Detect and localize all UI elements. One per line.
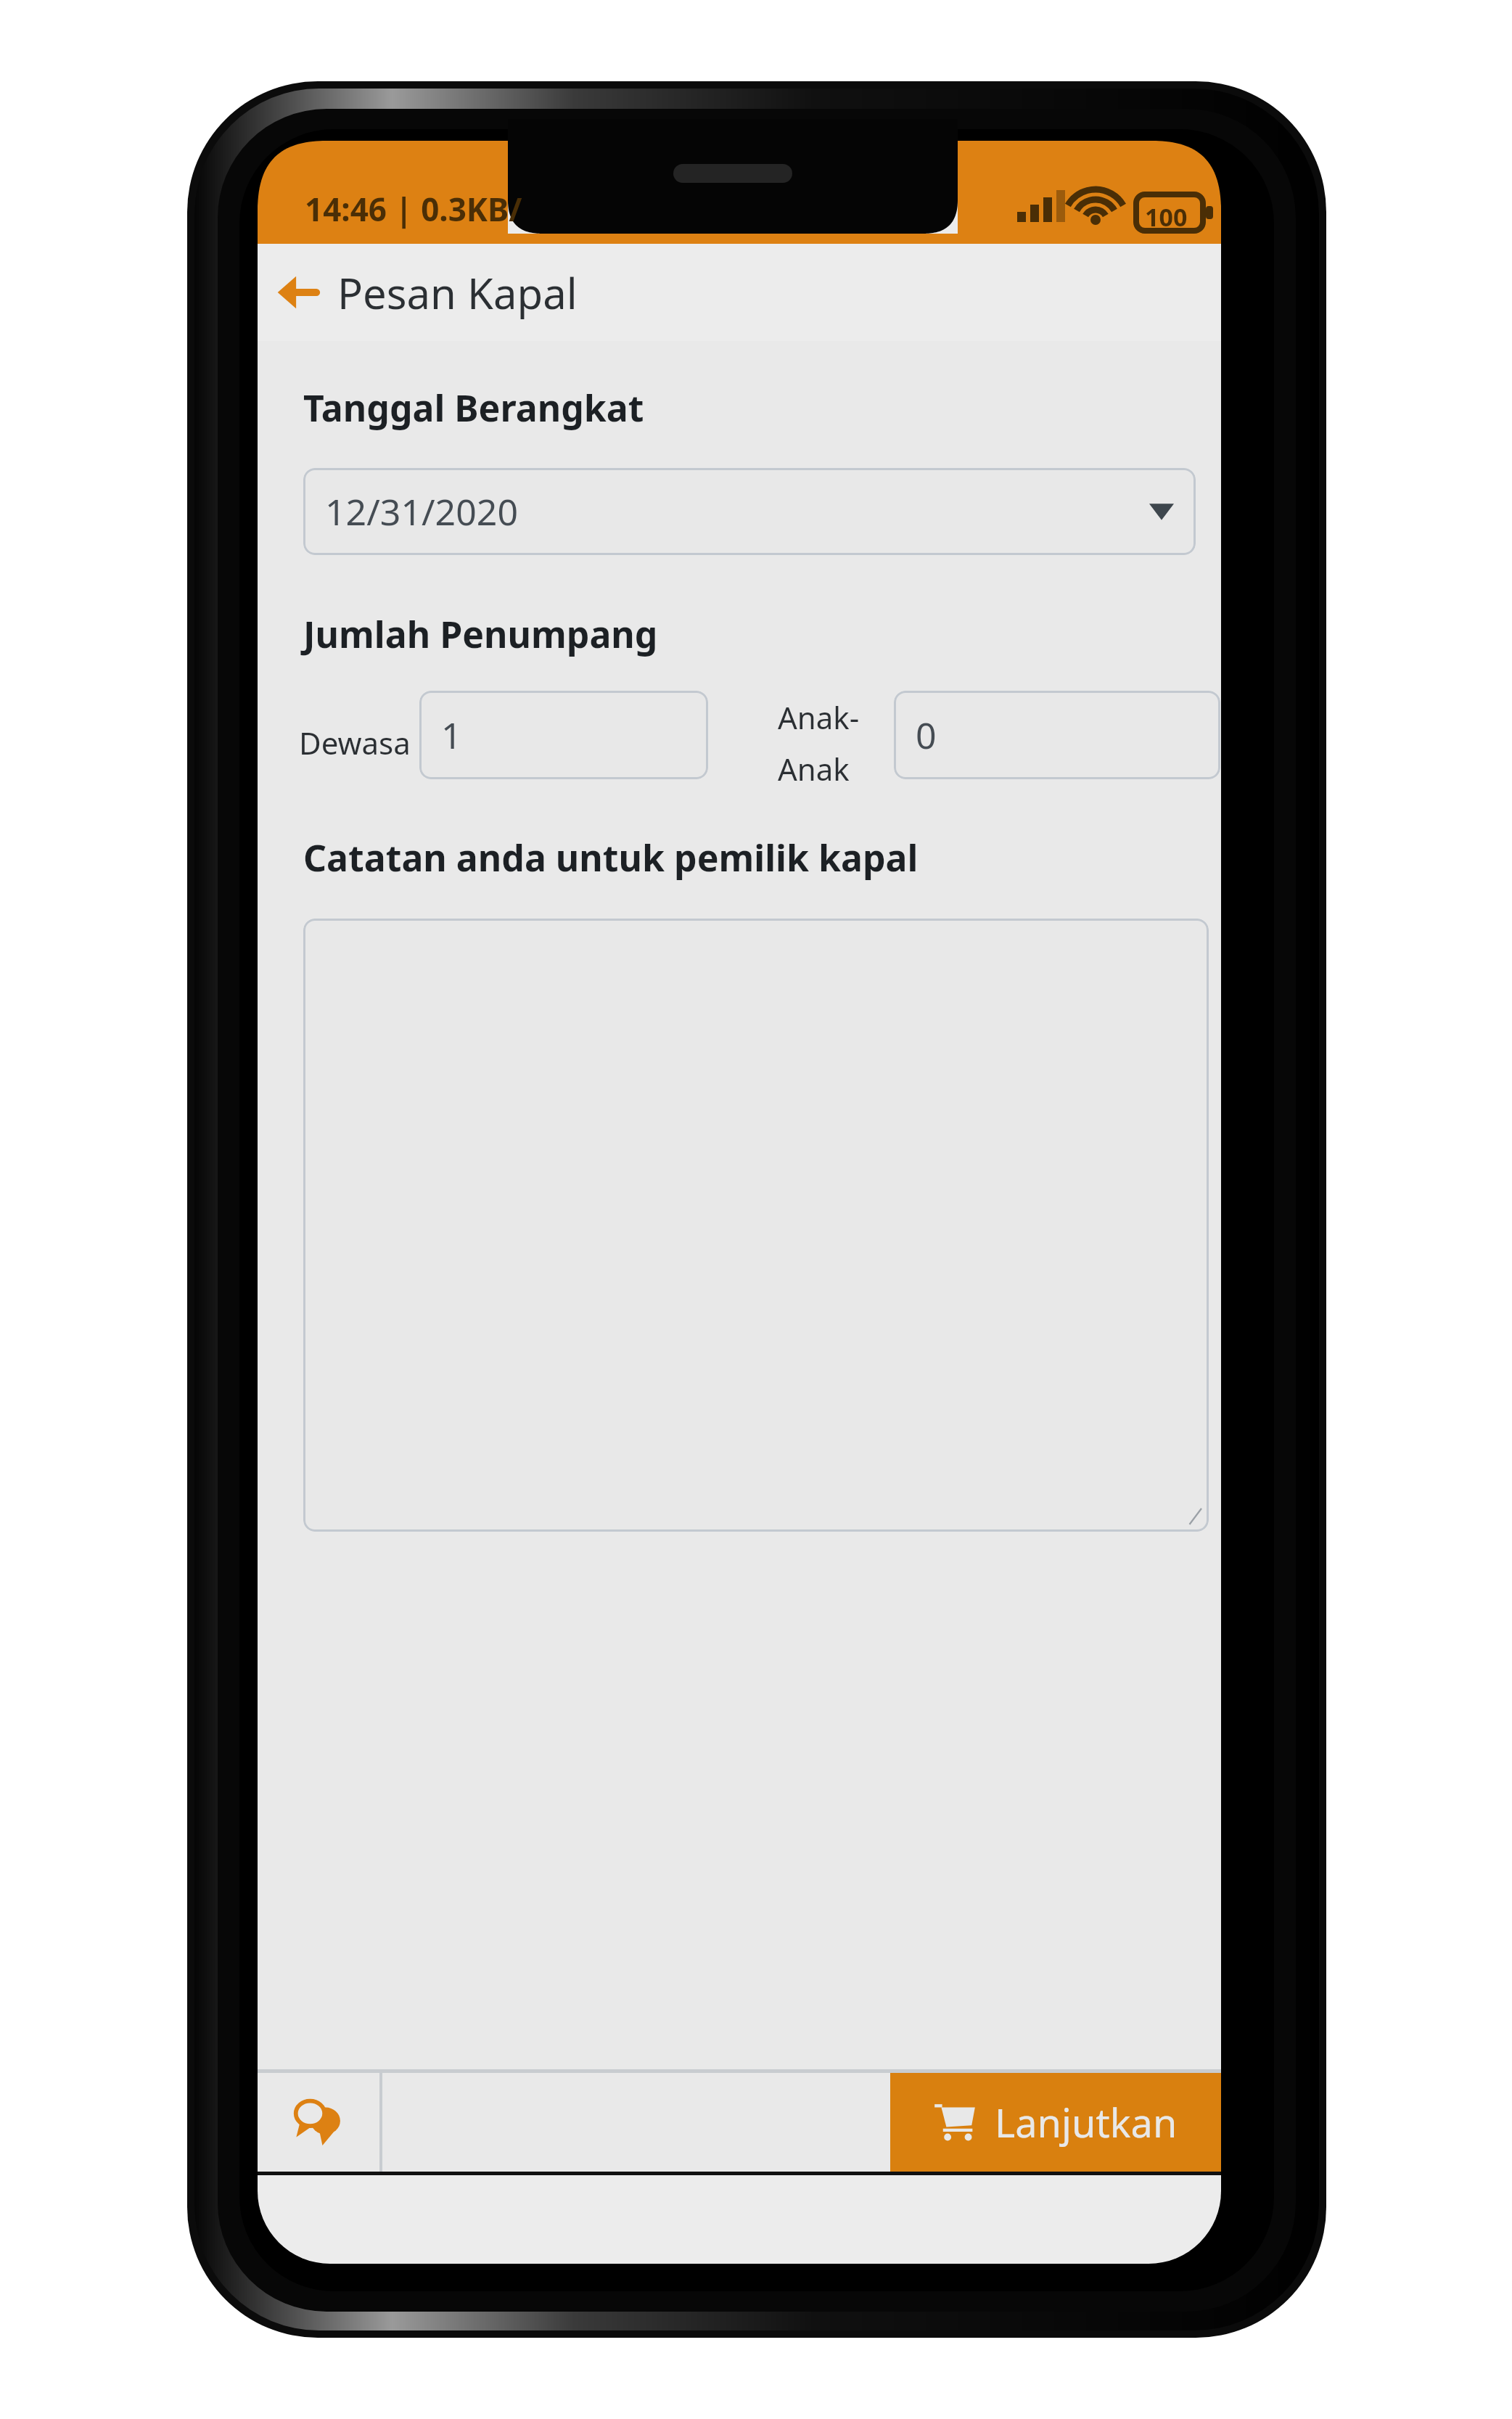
button[interactable]: 12/31/2020 (303, 468, 1196, 555)
staticText: 12/31/2020 (325, 487, 518, 536)
staticText: Pesan Kapal (337, 264, 578, 321)
button[interactable]: Lanjutkan (890, 2073, 1221, 2172)
staticText: 0 (916, 710, 937, 760)
staticText: 100 (1145, 200, 1188, 234)
staticText: Anak- (778, 697, 860, 738)
staticText: Dewasa (299, 722, 411, 763)
staticText: Jumlah Penumpang (303, 609, 658, 659)
staticText: Catatan anda untuk pemilik kapal (303, 833, 919, 882)
button[interactable]: Adult passenger count (419, 691, 708, 779)
staticText: Tanggal Berangkat (303, 383, 644, 432)
staticText: 1 (441, 710, 462, 760)
staticText: Anak (778, 748, 850, 789)
button[interactable] (303, 919, 1209, 1532)
staticText: 14:46 | 0.3KB/ (305, 187, 522, 231)
staticText: Lanjutkan (995, 2095, 1178, 2149)
button[interactable]: Back (258, 244, 337, 341)
button[interactable]: Chat (258, 2073, 379, 2172)
button[interactable]: Child passenger count (894, 691, 1220, 779)
